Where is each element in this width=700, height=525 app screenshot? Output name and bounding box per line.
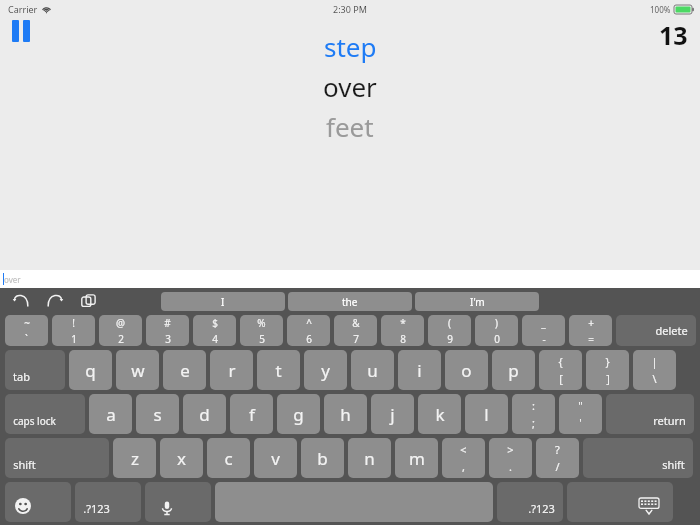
button[interactable]: }: [586, 350, 629, 390]
button[interactable]: i: [398, 350, 441, 390]
staticText: |: [651, 354, 658, 369]
button[interactable]: x: [160, 438, 203, 478]
button[interactable]: p: [492, 350, 535, 390]
staticText: step: [324, 29, 377, 64]
staticText: return: [653, 413, 686, 428]
staticText: ?: [555, 442, 560, 457]
button[interactable]: !: [52, 315, 95, 346]
button[interactable]: Paste: [78, 290, 100, 312]
button[interactable]: l: [465, 394, 508, 434]
staticText: the: [342, 295, 358, 309]
button[interactable]: c: [207, 438, 250, 478]
staticText: /: [555, 459, 560, 474]
staticText: @: [116, 316, 125, 330]
staticText: .?123: [83, 501, 110, 516]
button[interactable]: ): [475, 315, 518, 346]
staticText: +: [588, 316, 594, 330]
button[interactable]: a: [89, 394, 132, 434]
button[interactable]: (: [428, 315, 471, 346]
button[interactable]: Redo: [44, 290, 66, 312]
staticText: 2: [118, 332, 124, 346]
button[interactable]: y: [304, 350, 347, 390]
button[interactable]: I: [161, 292, 285, 311]
staticText: t: [275, 359, 282, 382]
staticText: ): [495, 316, 498, 330]
staticText: f: [249, 403, 255, 426]
button[interactable]: %: [240, 315, 283, 346]
button[interactable]: q: [69, 350, 112, 390]
button[interactable]: g: [277, 394, 320, 434]
button[interactable]: return: [606, 394, 694, 434]
button[interactable]: +: [569, 315, 612, 346]
button[interactable]: Pause: [12, 20, 30, 42]
staticText: i: [417, 359, 422, 382]
button[interactable]: b: [301, 438, 344, 478]
staticText: 0: [494, 332, 500, 346]
button[interactable]: ~: [5, 315, 48, 346]
button[interactable]: {: [539, 350, 582, 390]
staticText: -: [542, 332, 546, 346]
staticText: over: [4, 274, 21, 285]
button[interactable]: shift: [583, 438, 693, 478]
button[interactable]: &: [334, 315, 377, 346]
button[interactable]: .?123: [497, 482, 563, 522]
staticText: 13: [659, 18, 688, 52]
staticText: m: [409, 447, 425, 470]
button[interactable]: #: [146, 315, 189, 346]
button[interactable]: >: [489, 438, 532, 478]
staticText: a: [106, 403, 116, 426]
button[interactable]: the: [288, 292, 412, 311]
button[interactable]: Undo: [10, 290, 32, 312]
button[interactable]: [5, 482, 71, 522]
button[interactable]: ": [559, 394, 602, 434]
button[interactable]: delete: [616, 315, 696, 346]
button[interactable]: u: [351, 350, 394, 390]
staticText: I: [221, 295, 225, 309]
button[interactable]: f: [230, 394, 273, 434]
staticText: ~: [24, 316, 30, 330]
staticText: I'm: [470, 295, 485, 309]
button[interactable]: $: [193, 315, 236, 346]
button[interactable]: r: [210, 350, 253, 390]
staticText: `: [25, 332, 28, 346]
button[interactable]: n: [348, 438, 391, 478]
button[interactable]: *: [381, 315, 424, 346]
button[interactable]: d: [183, 394, 226, 434]
staticText: over: [323, 69, 377, 104]
staticText: n: [364, 447, 375, 470]
staticText: 3: [165, 332, 171, 346]
staticText: d: [199, 403, 210, 426]
button[interactable]: s: [136, 394, 179, 434]
button[interactable]: over: [0, 270, 700, 288]
staticText: 1: [71, 332, 77, 346]
staticText: g: [293, 403, 304, 426]
button[interactable]: h: [324, 394, 367, 434]
button[interactable]: [145, 482, 211, 522]
button[interactable]: [567, 482, 673, 522]
button[interactable]: @: [99, 315, 142, 346]
button[interactable]: j: [371, 394, 414, 434]
button[interactable]: w: [116, 350, 159, 390]
button[interactable]: z: [113, 438, 156, 478]
button[interactable]: o: [445, 350, 488, 390]
button[interactable]: :: [512, 394, 555, 434]
staticText: [: [559, 371, 563, 386]
button[interactable]: shift: [5, 438, 109, 478]
button[interactable]: ^: [287, 315, 330, 346]
button[interactable]: .?123: [75, 482, 141, 522]
button[interactable]: t: [257, 350, 300, 390]
button[interactable]: caps lock: [5, 394, 85, 434]
button[interactable]: <: [442, 438, 485, 478]
button[interactable]: e: [163, 350, 206, 390]
button[interactable]: tab: [5, 350, 65, 390]
button[interactable]: _: [522, 315, 565, 346]
button[interactable]: m: [395, 438, 438, 478]
staticText: Carrier: [8, 3, 38, 15]
button[interactable]: I'm: [415, 292, 539, 311]
button[interactable]: v: [254, 438, 297, 478]
staticText: 4: [212, 332, 218, 346]
button[interactable]: k: [418, 394, 461, 434]
button[interactable]: ?: [536, 438, 579, 478]
button[interactable]: |: [633, 350, 676, 390]
